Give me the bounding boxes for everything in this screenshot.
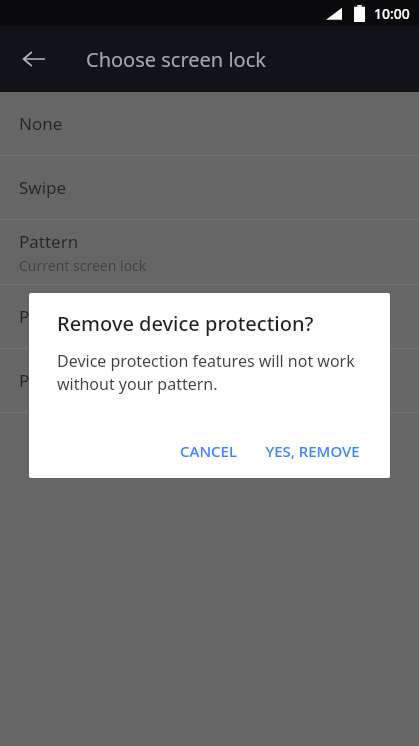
staticText: Swipe	[19, 176, 67, 199]
button[interactable]: PIN	[0, 285, 419, 348]
staticText: Password	[19, 369, 96, 392]
staticText: Device protection features will not work…	[57, 350, 364, 395]
button[interactable]: YES, REMOVE	[254, 432, 371, 470]
staticText: 10:00	[374, 4, 410, 23]
button[interactable]: CANCEL	[169, 432, 248, 470]
staticText: CANCEL	[180, 441, 237, 461]
button[interactable]: None	[0, 92, 419, 155]
staticText: Remove device protection?	[57, 310, 314, 337]
button[interactable]: Password	[0, 349, 419, 412]
staticText: Pattern	[19, 230, 79, 253]
button[interactable]: Back	[10, 35, 58, 83]
button[interactable]: Pattern	[0, 220, 419, 284]
button[interactable]: Swipe	[0, 156, 419, 219]
staticText: YES, REMOVE	[265, 441, 360, 461]
staticText: Current screen lock	[19, 256, 147, 275]
staticText: None	[19, 112, 63, 135]
staticText: Choose screen lock	[86, 46, 266, 73]
staticText: PIN	[19, 305, 48, 328]
